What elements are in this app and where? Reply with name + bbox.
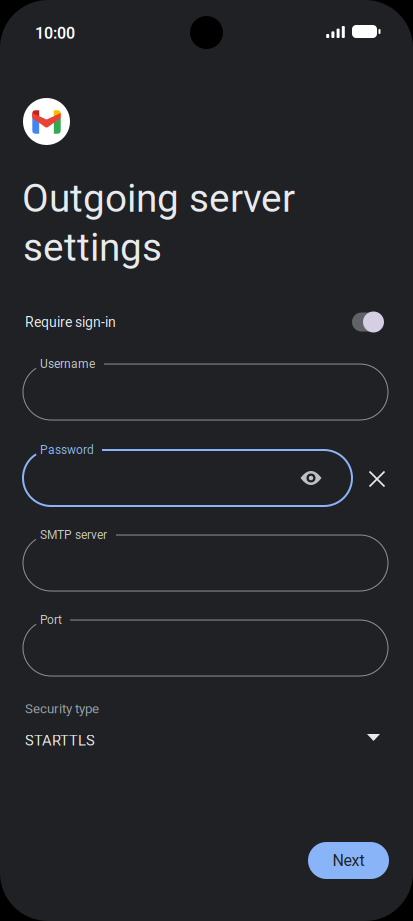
button[interactable]: Security type <box>0 698 413 764</box>
staticText: Outgoing server <box>22 176 295 221</box>
staticText: Security type <box>25 701 99 717</box>
staticText: Port <box>40 613 62 627</box>
button[interactable]: Require sign-in <box>352 307 392 337</box>
staticText: STARTTLS <box>25 732 95 749</box>
staticText: Next <box>332 851 364 870</box>
button[interactable]: Next <box>308 842 389 879</box>
staticText: Password <box>40 443 94 457</box>
button[interactable]: Clear password <box>359 461 395 497</box>
staticText: Username <box>40 357 95 371</box>
staticText: SMTP server <box>40 528 107 542</box>
staticText: 10:00 <box>35 24 75 43</box>
staticText: settings <box>23 225 162 270</box>
staticText: Require sign-in <box>25 314 116 330</box>
